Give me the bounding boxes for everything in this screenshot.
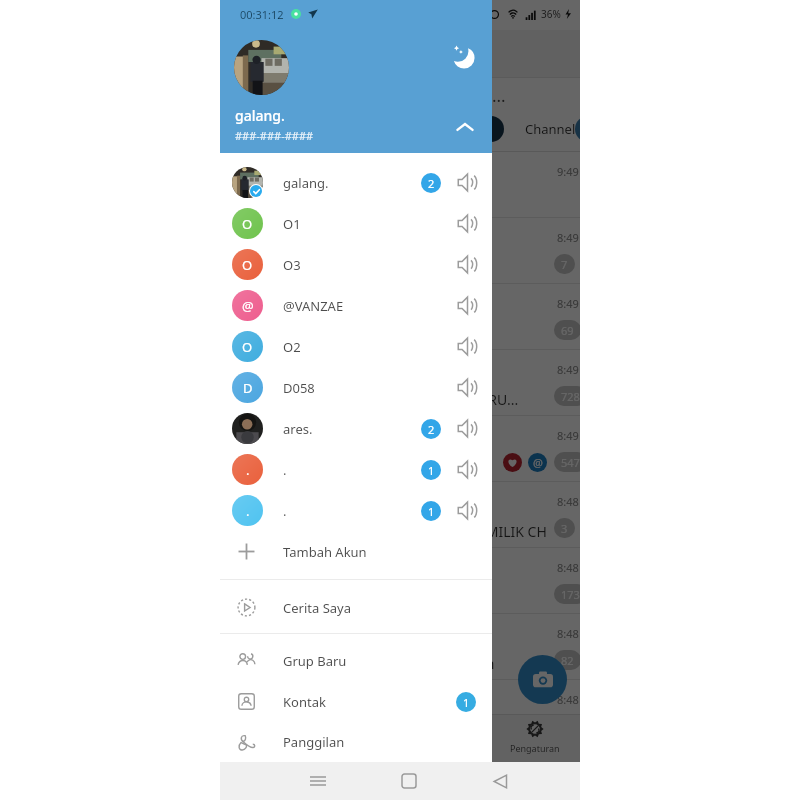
staticText: 8:49	[557, 296, 579, 311]
staticText: 8:48	[557, 494, 579, 509]
staticText: O	[242, 215, 253, 233]
staticText: 728	[561, 389, 580, 404]
staticText: Pengaturan	[510, 742, 560, 754]
staticText: 69	[561, 323, 574, 338]
button[interactable]: Mute notifications	[450, 449, 484, 490]
button[interactable]: Back	[482, 763, 518, 799]
staticText: 82	[561, 653, 574, 668]
button[interactable]: Toggle night mode	[446, 40, 480, 74]
staticText: 8:49	[557, 428, 579, 443]
staticText: 7	[561, 257, 568, 272]
staticText: ares.	[283, 420, 313, 438]
button[interactable]: Mute notifications	[450, 326, 484, 367]
button[interactable]: O	[220, 244, 492, 285]
staticText: 36%	[541, 7, 561, 21]
button[interactable]: D	[220, 367, 492, 408]
staticText: @	[533, 455, 543, 470]
button[interactable]: @	[220, 285, 492, 326]
staticText: D	[243, 379, 253, 397]
staticText: .	[246, 461, 250, 479]
staticText: O3	[283, 256, 301, 274]
button[interactable]: Mute notifications	[450, 285, 484, 326]
staticText: 9:49	[557, 164, 579, 179]
staticText: D058	[283, 379, 315, 397]
button[interactable]: Kontak	[220, 681, 492, 722]
staticText: URU...	[478, 390, 519, 409]
button[interactable]: New photo	[518, 655, 567, 704]
staticText: EMILIK CH	[478, 522, 547, 541]
button[interactable]: Expand accounts	[450, 112, 480, 142]
staticText: O	[242, 256, 253, 274]
staticText: 2	[428, 176, 435, 191]
button[interactable]: Mute notifications	[450, 408, 484, 449]
staticText: .	[283, 461, 287, 479]
staticText: 3	[561, 521, 568, 536]
staticText: 1	[428, 463, 435, 478]
staticText: galang.	[235, 106, 285, 125]
staticText: O	[242, 338, 253, 356]
staticText: ...	[492, 84, 506, 107]
staticText: 173	[561, 587, 580, 602]
staticText: O1	[283, 215, 301, 233]
button[interactable]: Recent apps	[300, 763, 336, 799]
staticText: 8:48	[557, 560, 579, 575]
button[interactable]: .	[220, 490, 492, 531]
button[interactable]: Cerita Saya	[220, 587, 492, 628]
staticText: 2	[428, 422, 435, 437]
button[interactable]: ares.	[220, 408, 492, 449]
staticText: Panggilan	[283, 733, 345, 751]
button[interactable]: Mute notifications	[450, 162, 484, 203]
staticText: an	[478, 654, 495, 673]
staticText: @	[242, 297, 254, 315]
staticText: Kontak	[283, 693, 326, 711]
staticText: ###-###-####	[235, 128, 314, 143]
button[interactable]: Mute notifications	[450, 244, 484, 285]
staticText: Grup Baru	[283, 652, 347, 670]
button[interactable]: Mute notifications	[450, 367, 484, 408]
button[interactable]: Mute notifications	[450, 490, 484, 531]
staticText: 8:48	[557, 692, 579, 707]
button[interactable]: Home	[391, 763, 427, 799]
button[interactable]: Panggilan	[220, 722, 492, 762]
staticText: 547	[561, 455, 580, 470]
staticText: @VANZAE	[283, 297, 344, 315]
staticText: Channel	[525, 120, 576, 138]
staticText: 8:48	[557, 626, 579, 641]
button[interactable]: Tambah Akun	[220, 531, 492, 572]
button[interactable]: Mute notifications	[450, 203, 484, 244]
button[interactable]: O	[220, 203, 492, 244]
staticText: 1	[428, 504, 435, 519]
staticText: Cerita Saya	[283, 599, 351, 617]
staticText: 8:49	[557, 230, 579, 245]
staticText: .	[283, 502, 287, 520]
staticText: galang.	[283, 174, 329, 192]
button[interactable]: .	[220, 449, 492, 490]
staticText: 8:49	[557, 362, 579, 377]
staticText: 1	[463, 695, 470, 710]
staticText: 00:31:12	[240, 7, 284, 22]
button[interactable]: Grup Baru	[220, 640, 492, 681]
staticText: O2	[283, 338, 301, 356]
button[interactable]: O	[220, 326, 492, 367]
staticText: Tambah Akun	[283, 543, 367, 561]
button[interactable]: galang.	[220, 162, 492, 203]
staticText: .	[246, 502, 250, 520]
